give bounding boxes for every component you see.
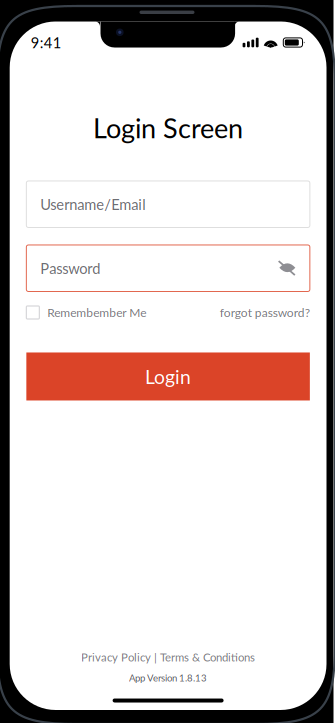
staticText: Login Screen	[93, 111, 243, 144]
staticText: Username/Email	[40, 195, 145, 213]
button[interactable]: Password	[26, 245, 310, 291]
button[interactable]: Privacy Policy | Terms & Conditions	[81, 650, 255, 664]
staticText: Login	[145, 365, 191, 388]
staticText: Password	[40, 259, 100, 277]
button[interactable]: forgot password?	[220, 305, 310, 320]
staticText: Privacy Policy | Terms & Conditions	[81, 650, 255, 664]
staticText: App Version 1.8.13	[129, 672, 207, 683]
button[interactable]: Username/Email	[26, 181, 310, 227]
staticText: Remembember Me	[47, 305, 146, 320]
button[interactable]: Remembember Me	[26, 305, 146, 320]
button[interactable]: Login	[26, 352, 310, 400]
button[interactable]: Show password	[279, 260, 296, 276]
staticText: forgot password?	[220, 305, 310, 320]
staticText: 9:41	[31, 34, 62, 51]
